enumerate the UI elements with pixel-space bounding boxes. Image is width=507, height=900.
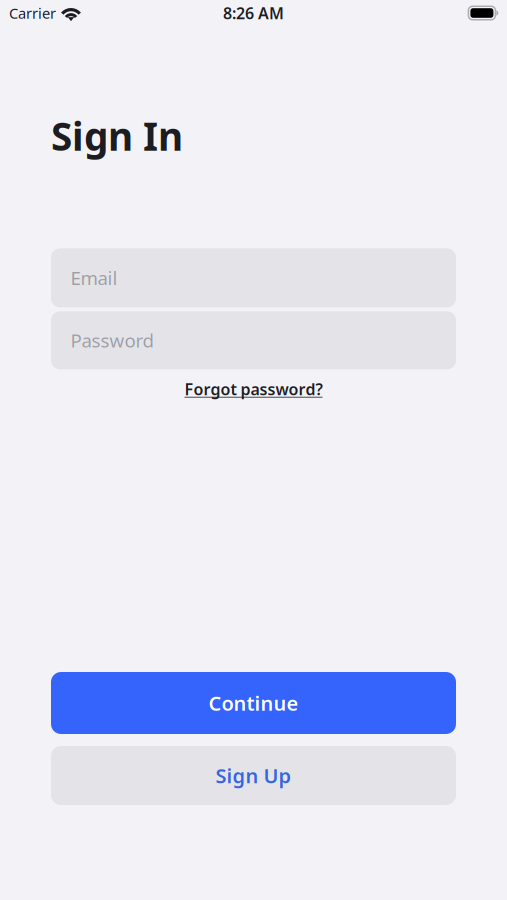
button[interactable]: Sign Up xyxy=(51,746,456,805)
staticText: Email xyxy=(70,265,117,290)
staticText: Carrier xyxy=(9,3,56,23)
button[interactable]: Continue xyxy=(51,672,456,734)
staticText: Password xyxy=(70,328,153,353)
staticText: Forgot password? xyxy=(184,378,322,399)
button[interactable]: Password xyxy=(51,311,456,369)
staticText: Sign Up xyxy=(215,762,291,789)
staticText: Sign In xyxy=(51,110,183,161)
staticText: 8:26 AM xyxy=(223,2,284,24)
button[interactable]: Email xyxy=(51,248,456,307)
button[interactable]: Forgot password? xyxy=(184,375,322,402)
staticText: Continue xyxy=(208,690,298,716)
